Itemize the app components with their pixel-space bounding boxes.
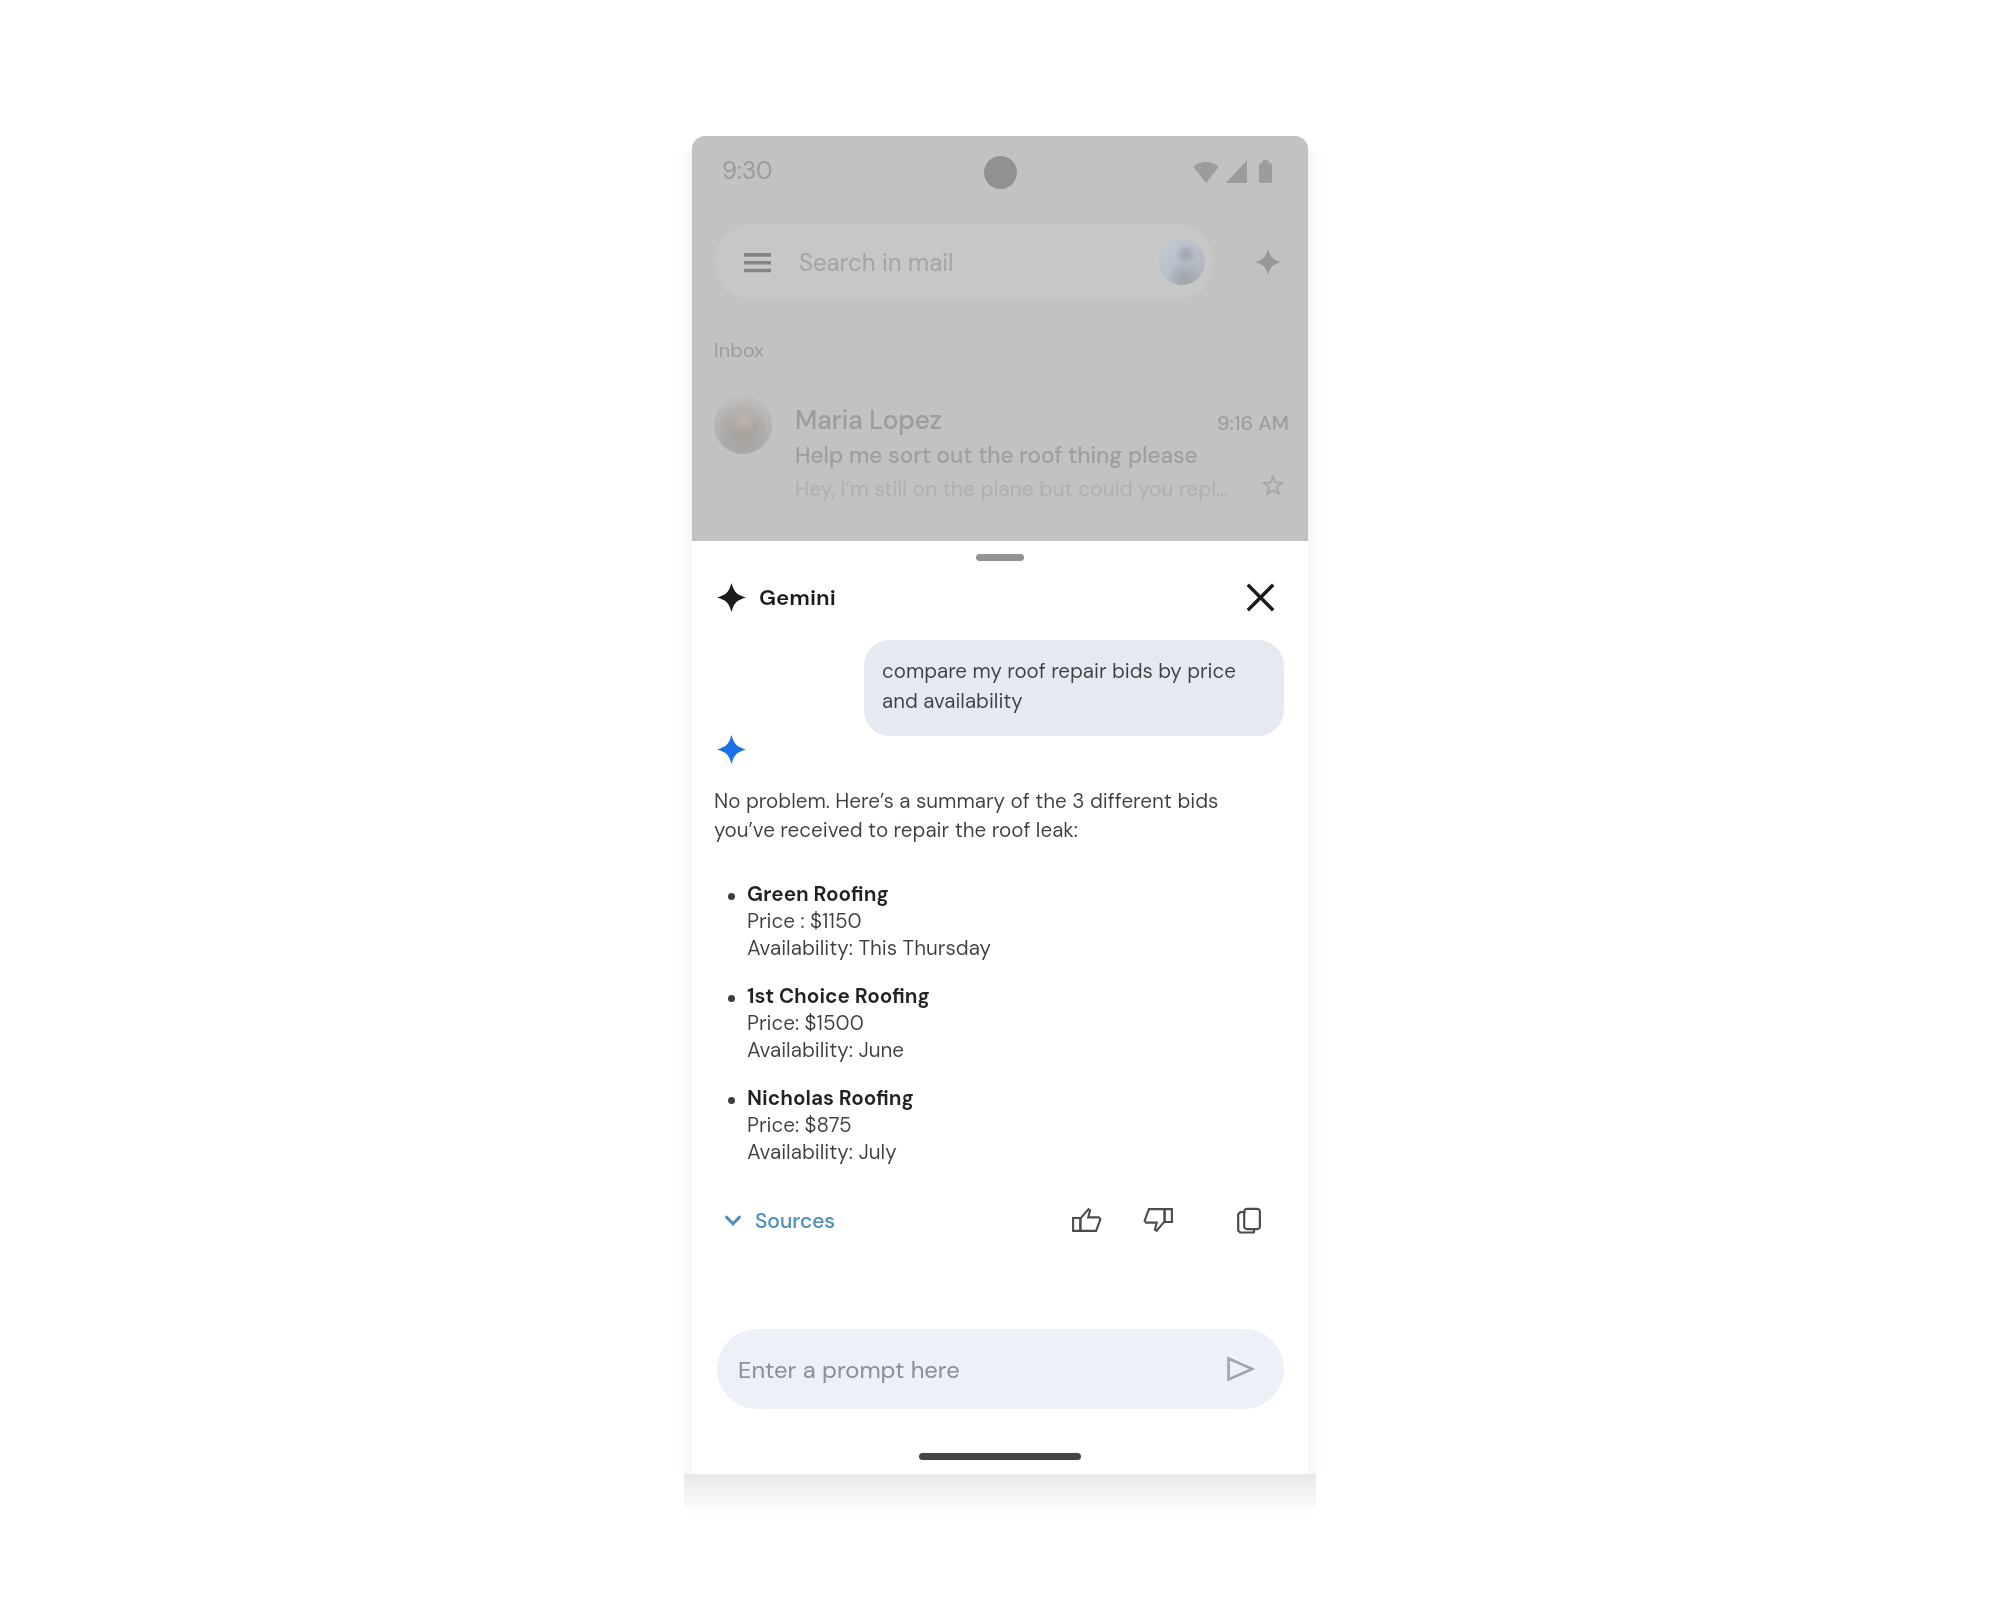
staticText: Hey, I’m still on the plane but could yo… <box>795 475 1228 502</box>
staticText: Green Roofing <box>747 881 889 908</box>
button[interactable]: Gemini <box>1255 249 1281 275</box>
button[interactable]: Good response <box>1063 1197 1109 1243</box>
button[interactable]: Close <box>1237 574 1283 620</box>
staticText: No problem. Here’s a summary of the 3 di… <box>714 788 1244 844</box>
staticText: Price : $1150 <box>747 908 862 935</box>
staticText: Search in mail <box>799 247 954 278</box>
button[interactable]: Star <box>1250 463 1296 509</box>
button[interactable]: compare my roof repair bids by price and… <box>864 640 1284 736</box>
staticText: Price: $1500 <box>747 1010 864 1037</box>
staticText: 9:16 AM <box>1217 410 1289 436</box>
button[interactable]: Sources <box>725 1198 836 1242</box>
button[interactable]: Copy <box>1226 1197 1272 1243</box>
button[interactable]: Search in mail <box>715 224 1213 300</box>
button[interactable]: Enter a prompt here <box>717 1329 1284 1409</box>
staticText: 1st Choice Roofing <box>747 983 930 1010</box>
staticText: Maria Lopez <box>795 403 942 437</box>
staticText: 9:30 <box>722 155 773 186</box>
button[interactable]: Bad response <box>1135 1197 1181 1243</box>
button[interactable]: Gemini <box>717 574 836 620</box>
staticText: Enter a prompt here <box>738 1354 960 1385</box>
staticText: Inbox <box>714 337 765 363</box>
staticText: Nicholas Roofing <box>747 1085 914 1112</box>
button[interactable] <box>700 384 1300 512</box>
staticText: Availability: June <box>747 1037 905 1064</box>
staticText: Help me sort out the roof thing please <box>795 441 1198 470</box>
staticText: compare my roof repair bids by price and… <box>882 658 1262 714</box>
staticText: Availability: This Thursday <box>747 935 991 962</box>
staticText: Sources <box>755 1207 836 1234</box>
staticText: Price: $875 <box>747 1112 852 1139</box>
staticText: Gemini <box>759 583 836 612</box>
staticText: Availability: July <box>747 1139 897 1166</box>
button[interactable]: Account <box>1159 239 1205 285</box>
